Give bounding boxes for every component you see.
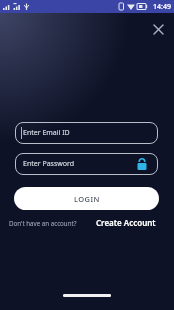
staticText: Enter Password [23, 159, 75, 169]
button[interactable]: Create Account [94, 215, 158, 230]
button[interactable]: Enter Email ID [15, 122, 158, 144]
staticText: 14:49 [153, 2, 171, 12]
button[interactable]: Enter Password [15, 153, 158, 175]
staticText: Don't have an account? [9, 219, 77, 227]
staticText: Enter Email ID [23, 128, 70, 138]
staticText: LOGIN [74, 194, 100, 204]
button[interactable]: LOGIN [14, 187, 159, 210]
staticText: Create Account [96, 217, 156, 228]
button[interactable] [149, 20, 167, 38]
